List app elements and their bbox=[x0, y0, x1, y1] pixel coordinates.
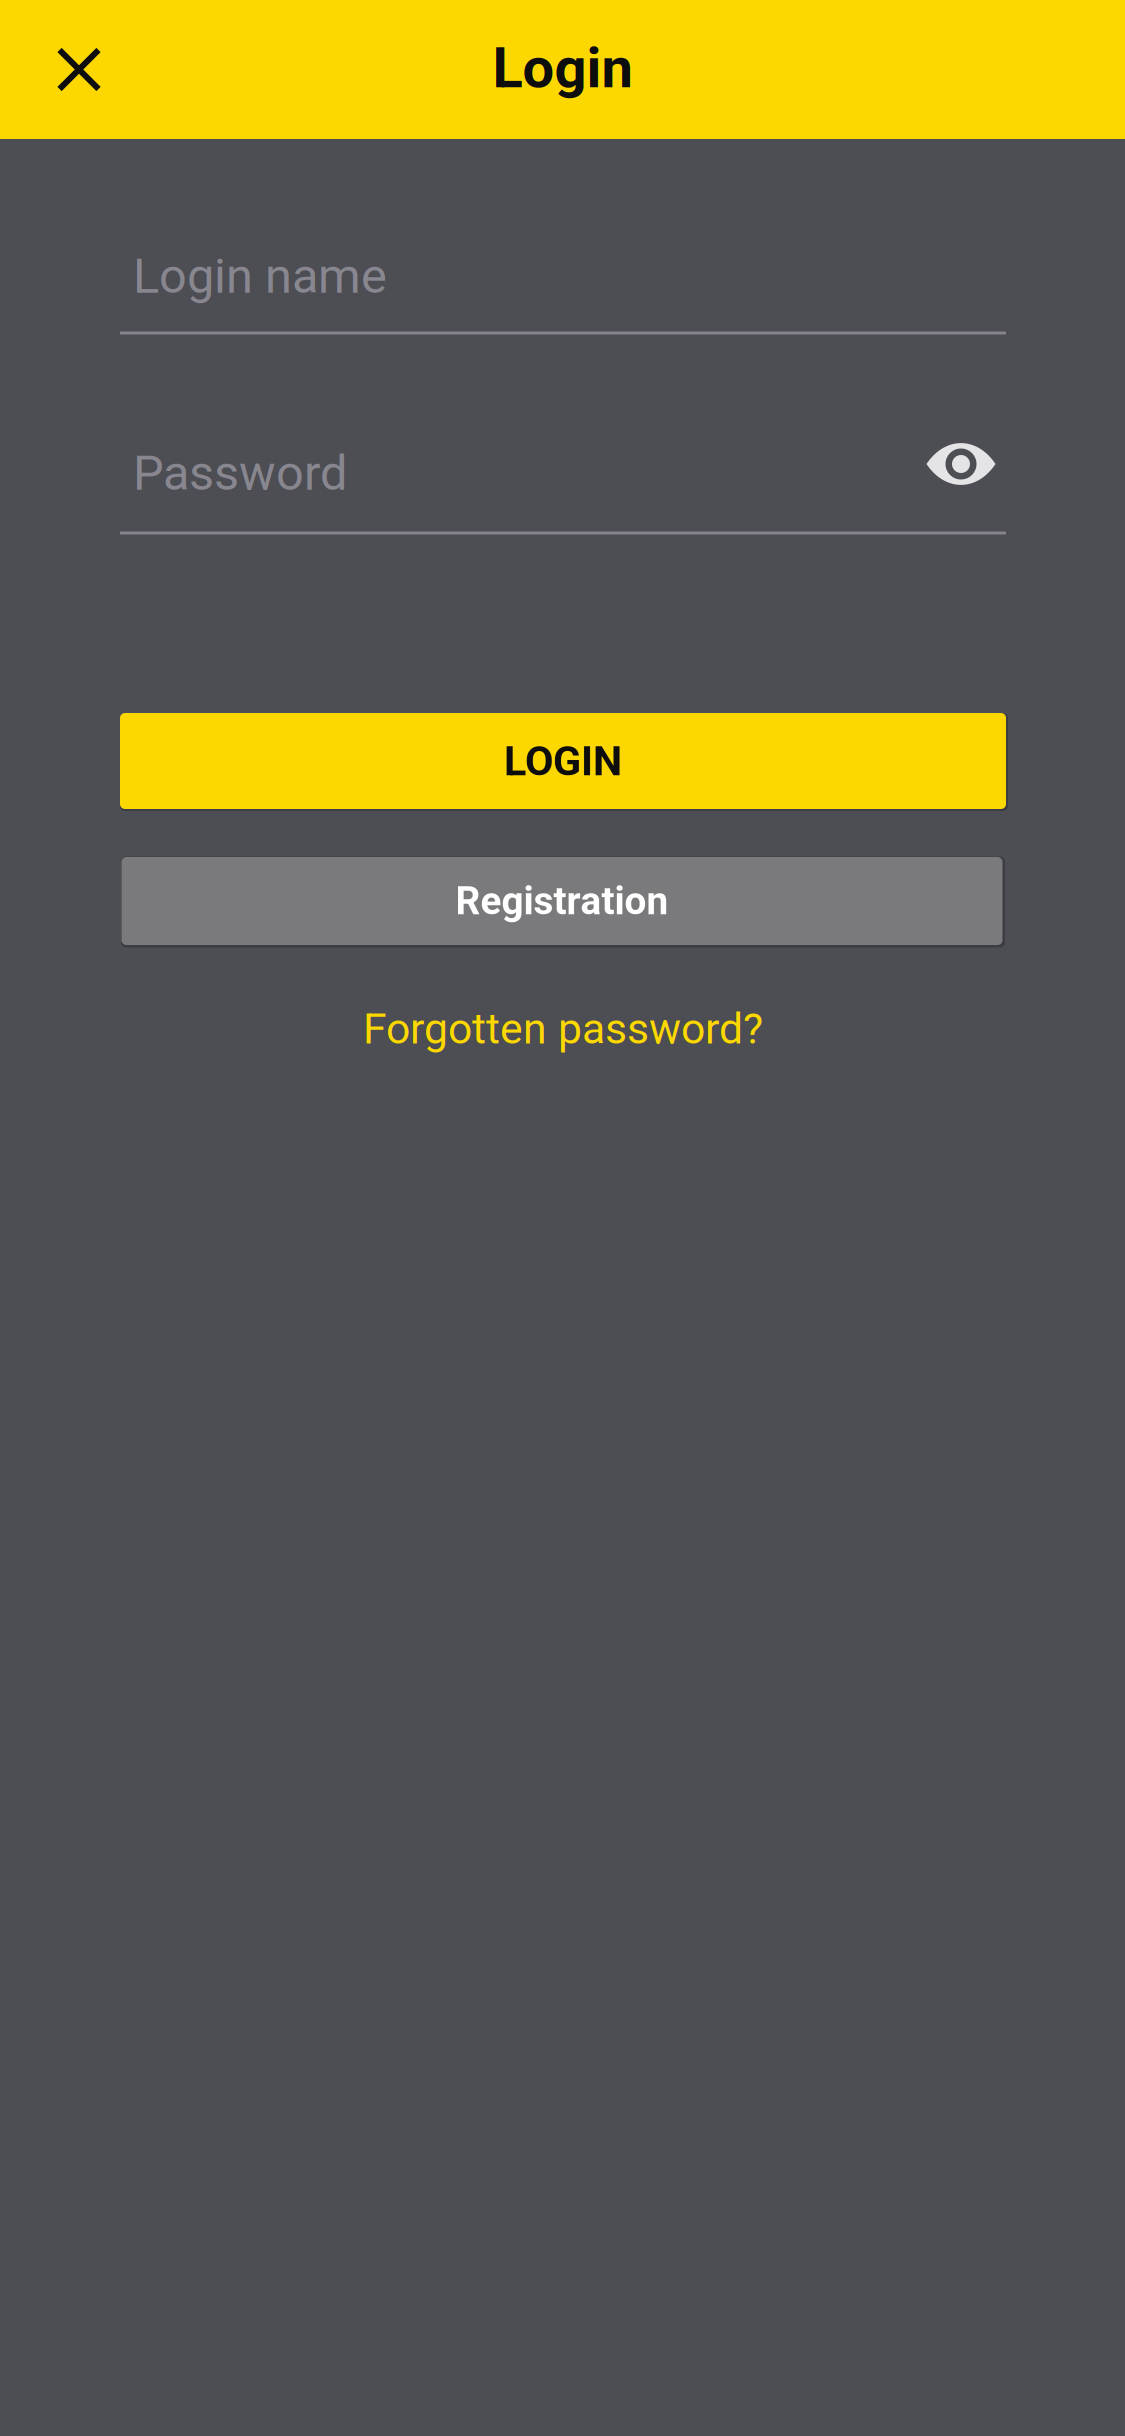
staticText: Registration bbox=[455, 878, 668, 924]
button[interactable]: Close bbox=[19, 0, 139, 139]
staticText: Login name bbox=[133, 247, 387, 304]
staticText: Forgotten password? bbox=[363, 1004, 763, 1054]
staticText: LOGIN bbox=[504, 737, 622, 785]
button[interactable]: Forgotten password? bbox=[351, 992, 775, 1066]
staticText: Login bbox=[492, 35, 632, 101]
button[interactable]: LOGIN bbox=[120, 713, 1006, 809]
staticText: Password bbox=[133, 444, 347, 501]
button[interactable]: Show password bbox=[913, 416, 1009, 512]
button[interactable]: Registration bbox=[121, 857, 1002, 945]
